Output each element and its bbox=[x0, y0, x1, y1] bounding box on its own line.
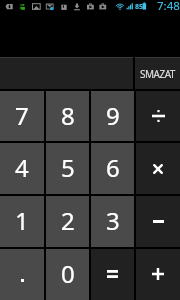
staticText: 8 bbox=[61, 99, 75, 132]
staticText: 5 bbox=[61, 151, 75, 184]
button[interactable]: 5 bbox=[46, 143, 89, 194]
button[interactable]: 1 bbox=[0, 196, 44, 247]
button[interactable]: 8 bbox=[46, 91, 89, 141]
button[interactable]: 4 bbox=[0, 143, 44, 194]
button[interactable]: 9 bbox=[91, 91, 134, 141]
button[interactable]: decimal point bbox=[0, 249, 44, 300]
staticText: 2 bbox=[61, 204, 75, 237]
staticText: 0 bbox=[61, 257, 75, 290]
staticText: SMAZAT bbox=[140, 67, 175, 81]
button[interactable]: 2 bbox=[46, 196, 89, 247]
staticText: 4 bbox=[15, 151, 29, 184]
button[interactable]: 7 bbox=[0, 91, 44, 141]
button[interactable]: equals bbox=[91, 249, 134, 300]
staticText: 6 bbox=[106, 151, 120, 184]
staticText: 7:48 bbox=[157, 0, 180, 12]
staticText: 7 bbox=[15, 99, 29, 132]
button[interactable]: 0 bbox=[46, 249, 89, 300]
button[interactable]: Multiply bbox=[136, 143, 180, 194]
button[interactable]: Subtract bbox=[136, 196, 180, 247]
staticText: 1 bbox=[15, 204, 29, 237]
staticText: 3 bbox=[106, 204, 120, 237]
button[interactable]: 3 bbox=[91, 196, 134, 247]
button[interactable]: Divide bbox=[136, 91, 180, 141]
button[interactable]: 6 bbox=[91, 143, 134, 194]
button[interactable]: SMAZAT bbox=[135, 57, 180, 89]
staticText: 85 bbox=[135, 2, 144, 12]
staticText: 9 bbox=[106, 99, 120, 132]
button[interactable]: Add bbox=[136, 249, 180, 300]
